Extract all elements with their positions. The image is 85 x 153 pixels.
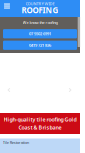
button[interactable]: Previous slide: [5, 86, 13, 94]
staticText: ROOFING: [21, 5, 58, 15]
button[interactable]: Menu: [1, 0, 13, 11]
staticText: Tile Restoration: [3, 140, 29, 145]
staticText: High-quality tile roofing Gold: [3, 116, 76, 123]
button[interactable]: 0419 721 836: [3, 41, 77, 50]
staticText: 07 5502 6991: [29, 31, 51, 36]
button[interactable]: 07 5502 6991: [3, 29, 77, 38]
staticText: Coast & Brisbane: [18, 124, 61, 131]
staticText: COUNTRY WIDE: [25, 1, 54, 6]
button[interactable]: Next slide: [66, 86, 74, 94]
staticText: We know the roofing: [22, 20, 57, 25]
staticText: 0419 721 836: [29, 43, 51, 48]
